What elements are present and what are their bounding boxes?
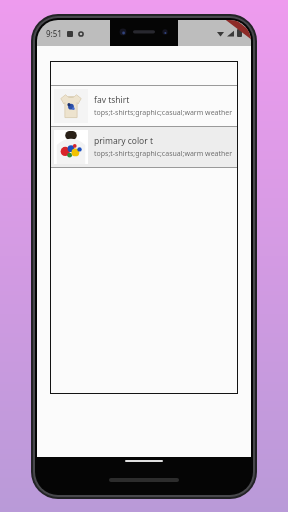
button[interactable]: fav tshirt (50, 86, 238, 126)
staticText: fav tshirt (94, 94, 130, 106)
button[interactable]: primary color t (50, 127, 238, 167)
other: primary color t (54, 130, 88, 164)
staticText: primary color t (94, 135, 154, 147)
other: fav tshirt (54, 89, 88, 123)
staticText: 9:51 (46, 28, 62, 39)
staticText: tops;t-shirts;graphic;casual;warm weathe… (94, 149, 233, 159)
staticText: tops;t-shirts;graphic;casual;warm weathe… (94, 108, 233, 118)
